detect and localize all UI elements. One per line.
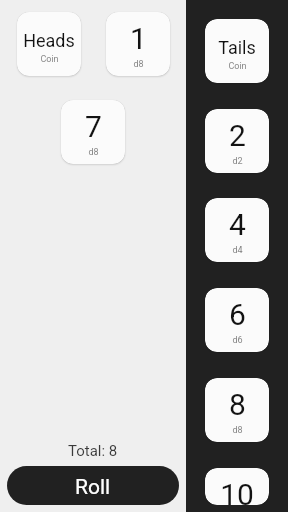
staticText: Coin bbox=[40, 54, 59, 65]
staticText: 7 bbox=[85, 109, 102, 144]
staticText: 2 bbox=[229, 118, 246, 153]
button[interactable]: Tails bbox=[205, 19, 269, 83]
staticText: 10 bbox=[220, 477, 254, 505]
staticText: Coin bbox=[228, 61, 247, 72]
button[interactable]: Roll bbox=[7, 466, 179, 505]
button[interactable]: Heads bbox=[17, 12, 81, 76]
staticText: 8 bbox=[229, 387, 246, 422]
staticText: d4 bbox=[232, 245, 243, 256]
staticText: d8 bbox=[133, 59, 144, 70]
button[interactable]: 2 bbox=[205, 109, 269, 173]
button[interactable]: 4 bbox=[205, 198, 269, 262]
staticText: Heads bbox=[23, 30, 75, 51]
button[interactable]: 10 bbox=[205, 468, 269, 505]
button[interactable]: 6 bbox=[205, 288, 269, 352]
staticText: d2 bbox=[232, 156, 243, 167]
staticText: Roll bbox=[75, 475, 111, 500]
staticText: Tails bbox=[218, 37, 256, 58]
button[interactable]: 7 bbox=[61, 100, 125, 164]
button[interactable]: 1 bbox=[106, 12, 170, 76]
staticText: d8 bbox=[232, 425, 243, 436]
staticText: 4 bbox=[229, 207, 246, 242]
staticText: d8 bbox=[88, 147, 99, 158]
button[interactable]: 8 bbox=[205, 378, 269, 442]
staticText: 6 bbox=[229, 297, 246, 332]
staticText: 1 bbox=[130, 21, 147, 56]
staticText: d6 bbox=[232, 335, 243, 346]
staticText: Total: 8 bbox=[68, 442, 118, 460]
